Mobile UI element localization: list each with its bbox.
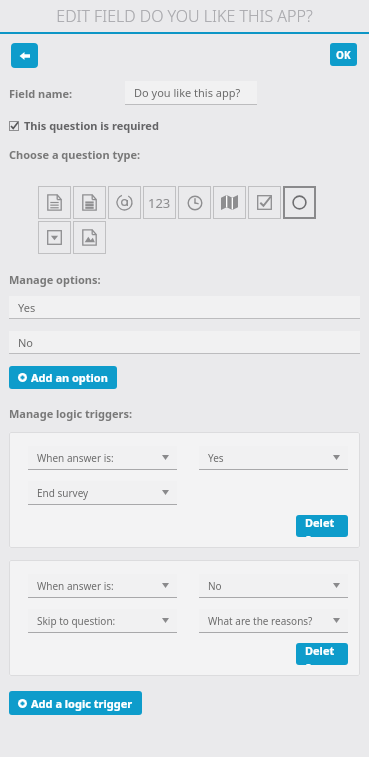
button[interactable]: Email (108, 186, 141, 219)
staticText: No (18, 335, 34, 350)
staticText: EDIT FIELD DO YOU LIKE THIS APP? (56, 5, 313, 27)
staticText: Do you like this app? (134, 85, 241, 100)
staticText: Manage logic triggers: (9, 406, 132, 421)
staticText: End survey (37, 486, 89, 500)
button[interactable]: Location (213, 186, 246, 219)
staticText: 123 (148, 194, 171, 212)
button[interactable]: Back (11, 43, 38, 68)
button[interactable]: This question is required (9, 118, 159, 133)
staticText: When answer is: (37, 579, 114, 593)
button[interactable]: When answer is: (28, 574, 177, 598)
staticText: Manage options: (9, 272, 101, 287)
staticText: OK (336, 48, 351, 62)
staticText: What are the reasons? (208, 614, 313, 628)
staticText: Yes (208, 451, 224, 465)
staticText: No (208, 579, 222, 593)
staticText: Add an option (31, 370, 108, 385)
button[interactable]: Image (73, 221, 106, 254)
button[interactable]: Delete (296, 515, 348, 537)
button[interactable]: Add a logic trigger (9, 691, 142, 715)
button[interactable]: When answer is: (28, 446, 177, 470)
staticText: Add a logic trigger (31, 696, 133, 711)
button[interactable]: Delete (296, 643, 348, 665)
button[interactable]: Time (178, 186, 211, 219)
button[interactable]: Long text (73, 186, 106, 219)
staticText: Choose a question type: (9, 147, 141, 162)
button[interactable]: Skip to question: (28, 609, 177, 633)
button[interactable]: What are the reasons? (199, 609, 348, 633)
staticText: When answer is: (37, 451, 114, 465)
button[interactable]: Dropdown (38, 221, 71, 254)
button[interactable]: Checkboxes (248, 186, 281, 219)
staticText: Delete (305, 515, 339, 537)
button[interactable]: End survey (28, 481, 177, 505)
staticText: Yes (18, 300, 36, 315)
staticText: Field name: (9, 86, 73, 101)
button[interactable]: Yes (9, 296, 360, 319)
staticText: This question is required (24, 118, 159, 133)
button[interactable]: No (199, 574, 348, 598)
staticText: Delete (305, 643, 339, 665)
button[interactable]: No (9, 331, 360, 354)
button[interactable]: Add an option (9, 366, 117, 389)
staticText: Skip to question: (37, 614, 116, 628)
button[interactable]: Short text (38, 186, 71, 219)
button[interactable]: Yes (199, 446, 348, 470)
button[interactable]: OK (330, 43, 357, 66)
button[interactable]: Do you like this app? (125, 81, 257, 105)
button[interactable]: Number (143, 186, 176, 219)
button[interactable]: Radio buttons (283, 186, 316, 219)
